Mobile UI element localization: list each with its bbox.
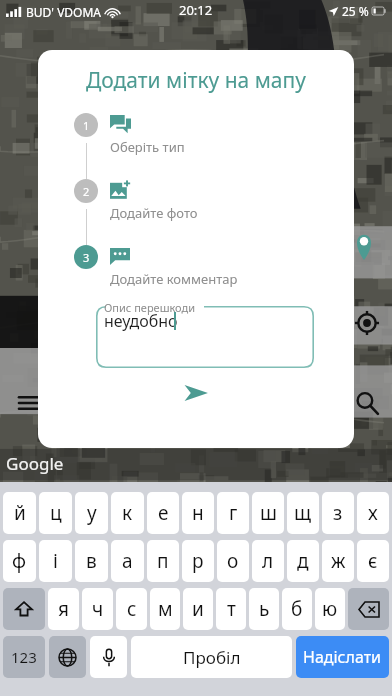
button[interactable]: п [147, 540, 179, 582]
button[interactable]: ц [39, 492, 72, 534]
button[interactable]: ь [249, 588, 279, 630]
button[interactable]: Voice input [90, 636, 127, 678]
staticText: Опис перешкоди [104, 300, 196, 315]
staticText: Google [6, 452, 64, 475]
button[interactable]: 1 [38, 113, 354, 179]
staticText: м [158, 596, 173, 622]
button[interactable]: Change language [49, 636, 86, 678]
staticText: д [297, 548, 309, 574]
staticText: к [122, 500, 133, 526]
staticText: Надіслати [303, 646, 382, 668]
staticText: неудобно [104, 310, 178, 332]
staticText: BUD' VDOMA [26, 4, 102, 20]
button[interactable]: р [182, 540, 214, 582]
button[interactable]: є [357, 540, 389, 582]
button[interactable]: г [217, 492, 249, 534]
staticText: ь [259, 596, 270, 622]
staticText: є [368, 548, 378, 574]
staticText: н [192, 500, 204, 526]
button[interactable]: Search [350, 386, 384, 420]
button[interactable]: т [216, 588, 246, 630]
staticText: 1 [83, 118, 90, 133]
button[interactable]: и [183, 588, 213, 630]
button[interactable]: ф [3, 540, 36, 582]
button[interactable]: к [111, 492, 144, 534]
staticText: щ [294, 500, 312, 526]
staticText: ш [260, 500, 277, 526]
button[interactable]: Menu [14, 386, 48, 420]
staticText: в [86, 548, 97, 574]
button[interactable]: My location [350, 306, 384, 340]
button[interactable]: 2 [38, 179, 354, 245]
button[interactable]: с [116, 588, 147, 630]
button[interactable]: х [357, 492, 389, 534]
staticText: і [53, 548, 58, 574]
staticText: я [58, 596, 69, 622]
staticText: р [192, 548, 204, 574]
staticText: т [227, 596, 236, 622]
staticText: Оберіть тип [110, 138, 185, 156]
staticText: л [262, 548, 274, 574]
button[interactable]: л [252, 540, 284, 582]
button[interactable]: Надіслати [296, 636, 389, 678]
staticText: г [229, 500, 238, 526]
button[interactable]: д [287, 540, 319, 582]
button[interactable]: о [217, 540, 249, 582]
button[interactable]: Send [38, 376, 354, 410]
button[interactable]: Пробіл [131, 636, 292, 678]
button[interactable]: н [182, 492, 214, 534]
staticText: Додайте фото [110, 204, 198, 222]
staticText: й [14, 500, 26, 526]
button[interactable]: Shift [3, 588, 45, 630]
staticText: 2 [83, 184, 90, 199]
staticText: а [122, 548, 133, 574]
staticText: 123 [11, 647, 37, 667]
button[interactable]: ю [315, 588, 345, 630]
staticText: ч [92, 596, 104, 622]
button[interactable]: ч [82, 588, 113, 630]
staticText: б [291, 596, 303, 622]
button[interactable]: Backspace [348, 588, 389, 630]
button[interactable]: щ [287, 492, 319, 534]
staticText: ю [322, 596, 338, 622]
staticText: ф [12, 548, 27, 574]
staticText: ц [50, 500, 62, 526]
button[interactable]: 3 [38, 245, 354, 288]
staticText: ж [331, 548, 346, 574]
button[interactable]: б [282, 588, 312, 630]
staticText: Додайте комментар [110, 270, 238, 288]
staticText: п [157, 548, 169, 574]
staticText: 20:12 [179, 1, 213, 19]
button[interactable]: в [75, 540, 108, 582]
staticText: Пробіл [183, 646, 241, 669]
button[interactable]: ж [322, 540, 354, 582]
staticText: Додати мітку на мапу [38, 66, 354, 95]
button[interactable]: м [150, 588, 180, 630]
button[interactable]: з [322, 492, 354, 534]
staticText: с [127, 596, 137, 622]
button[interactable]: ш [252, 492, 284, 534]
staticText: е [158, 500, 169, 526]
button[interactable]: у [75, 492, 108, 534]
staticText: х [368, 500, 378, 526]
staticText: у [87, 500, 97, 526]
staticText: и [192, 596, 204, 622]
button[interactable]: 123 [3, 636, 45, 678]
button[interactable]: а [111, 540, 144, 582]
staticText: 3 [83, 250, 90, 265]
button[interactable]: е [147, 492, 179, 534]
staticText: 25 % [342, 3, 369, 19]
button[interactable]: й [3, 492, 36, 534]
staticText: з [333, 500, 343, 526]
button[interactable]: я [48, 588, 79, 630]
button[interactable]: і [39, 540, 72, 582]
staticText: о [227, 548, 239, 574]
